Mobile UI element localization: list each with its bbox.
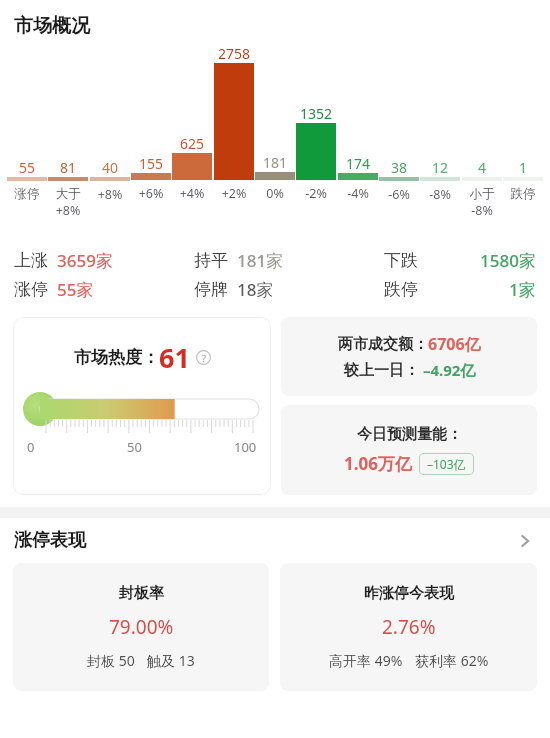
staticText: -4% bbox=[338, 185, 378, 202]
staticText: 181 bbox=[255, 153, 295, 172]
staticText: 大于 bbox=[48, 186, 88, 202]
staticText: 155 bbox=[131, 154, 171, 173]
staticText: +8% bbox=[48, 202, 88, 219]
staticText: 6706亿 bbox=[428, 333, 481, 355]
staticText: 38 bbox=[379, 158, 419, 177]
staticText: 100 bbox=[234, 438, 257, 456]
staticText: 1.06万亿 bbox=[344, 452, 412, 475]
staticText: 2758 bbox=[214, 44, 254, 63]
other: More bbox=[514, 530, 536, 552]
staticText: 625 bbox=[172, 134, 212, 153]
staticText: 封板 50 bbox=[87, 651, 135, 670]
staticText: -8% bbox=[420, 186, 460, 203]
staticText: 涨停 bbox=[7, 186, 47, 202]
staticText: 封板率 bbox=[119, 584, 164, 603]
staticText: 市场概况 bbox=[14, 14, 90, 38]
staticText: 81 bbox=[48, 158, 88, 177]
staticText: 1352 bbox=[296, 104, 336, 123]
staticText: 174 bbox=[338, 154, 378, 173]
staticText: 较上一日： bbox=[344, 361, 419, 380]
staticText: 40 bbox=[90, 158, 130, 177]
staticText: +8% bbox=[90, 186, 130, 203]
staticText: 涨停 bbox=[14, 279, 48, 300]
staticText: 1家 bbox=[509, 278, 536, 301]
staticText: 高开率 49% bbox=[329, 651, 403, 670]
staticText: 55 bbox=[7, 158, 47, 177]
staticText: 2.76% bbox=[382, 614, 436, 640]
staticText: 12 bbox=[420, 158, 460, 177]
staticText: 0% bbox=[255, 185, 295, 202]
staticText: 上涨 bbox=[14, 250, 48, 271]
staticText: 停牌 bbox=[194, 279, 228, 300]
button[interactable]: 两市成交额： bbox=[281, 317, 537, 396]
staticText: 下跌 bbox=[384, 250, 418, 271]
staticText: 跌停 bbox=[384, 279, 418, 300]
staticText: 3659家 bbox=[57, 249, 113, 272]
staticText: 79.00% bbox=[109, 614, 174, 640]
staticText: 18家 bbox=[237, 278, 274, 301]
staticText: 61 bbox=[159, 339, 190, 376]
staticText: 昨涨停今表现 bbox=[364, 584, 454, 603]
staticText: 市场热度： bbox=[74, 347, 159, 368]
staticText: -8% bbox=[462, 202, 502, 219]
staticText: -6% bbox=[379, 186, 419, 203]
staticText: –4.92亿 bbox=[419, 360, 476, 380]
staticText: 50 bbox=[127, 438, 142, 456]
button[interactable]: 涨停表现 bbox=[0, 518, 550, 563]
other: Info bbox=[196, 350, 211, 365]
button[interactable]: 今日预测量能： bbox=[281, 405, 537, 495]
staticText: 触及 13 bbox=[147, 651, 195, 670]
staticText: 1 bbox=[503, 158, 543, 177]
staticText: 今日预测量能： bbox=[357, 425, 462, 444]
staticText: 跌停 bbox=[503, 186, 543, 202]
staticText: 获利率 62% bbox=[415, 651, 489, 670]
staticText: 1580家 bbox=[480, 249, 536, 272]
button[interactable]: 昨涨停今表现 bbox=[280, 563, 537, 691]
staticText: 0 bbox=[27, 438, 35, 456]
staticText: 两市成交额： bbox=[338, 335, 428, 354]
staticText: +4% bbox=[172, 185, 212, 202]
staticText: ? bbox=[202, 352, 206, 364]
staticText: 持平 bbox=[194, 250, 228, 271]
staticText: 181家 bbox=[237, 249, 284, 272]
staticText: 涨停表现 bbox=[14, 529, 86, 552]
staticText: -2% bbox=[296, 185, 336, 202]
button[interactable]: 封板率 bbox=[13, 563, 269, 691]
staticText: 小于 bbox=[462, 186, 502, 202]
staticText: –103亿 bbox=[427, 456, 466, 472]
button[interactable]: 市场热度： bbox=[13, 317, 271, 495]
staticText: 55家 bbox=[57, 278, 94, 301]
staticText: +6% bbox=[131, 185, 171, 202]
staticText: 4 bbox=[462, 158, 502, 177]
staticText: +2% bbox=[214, 185, 254, 202]
